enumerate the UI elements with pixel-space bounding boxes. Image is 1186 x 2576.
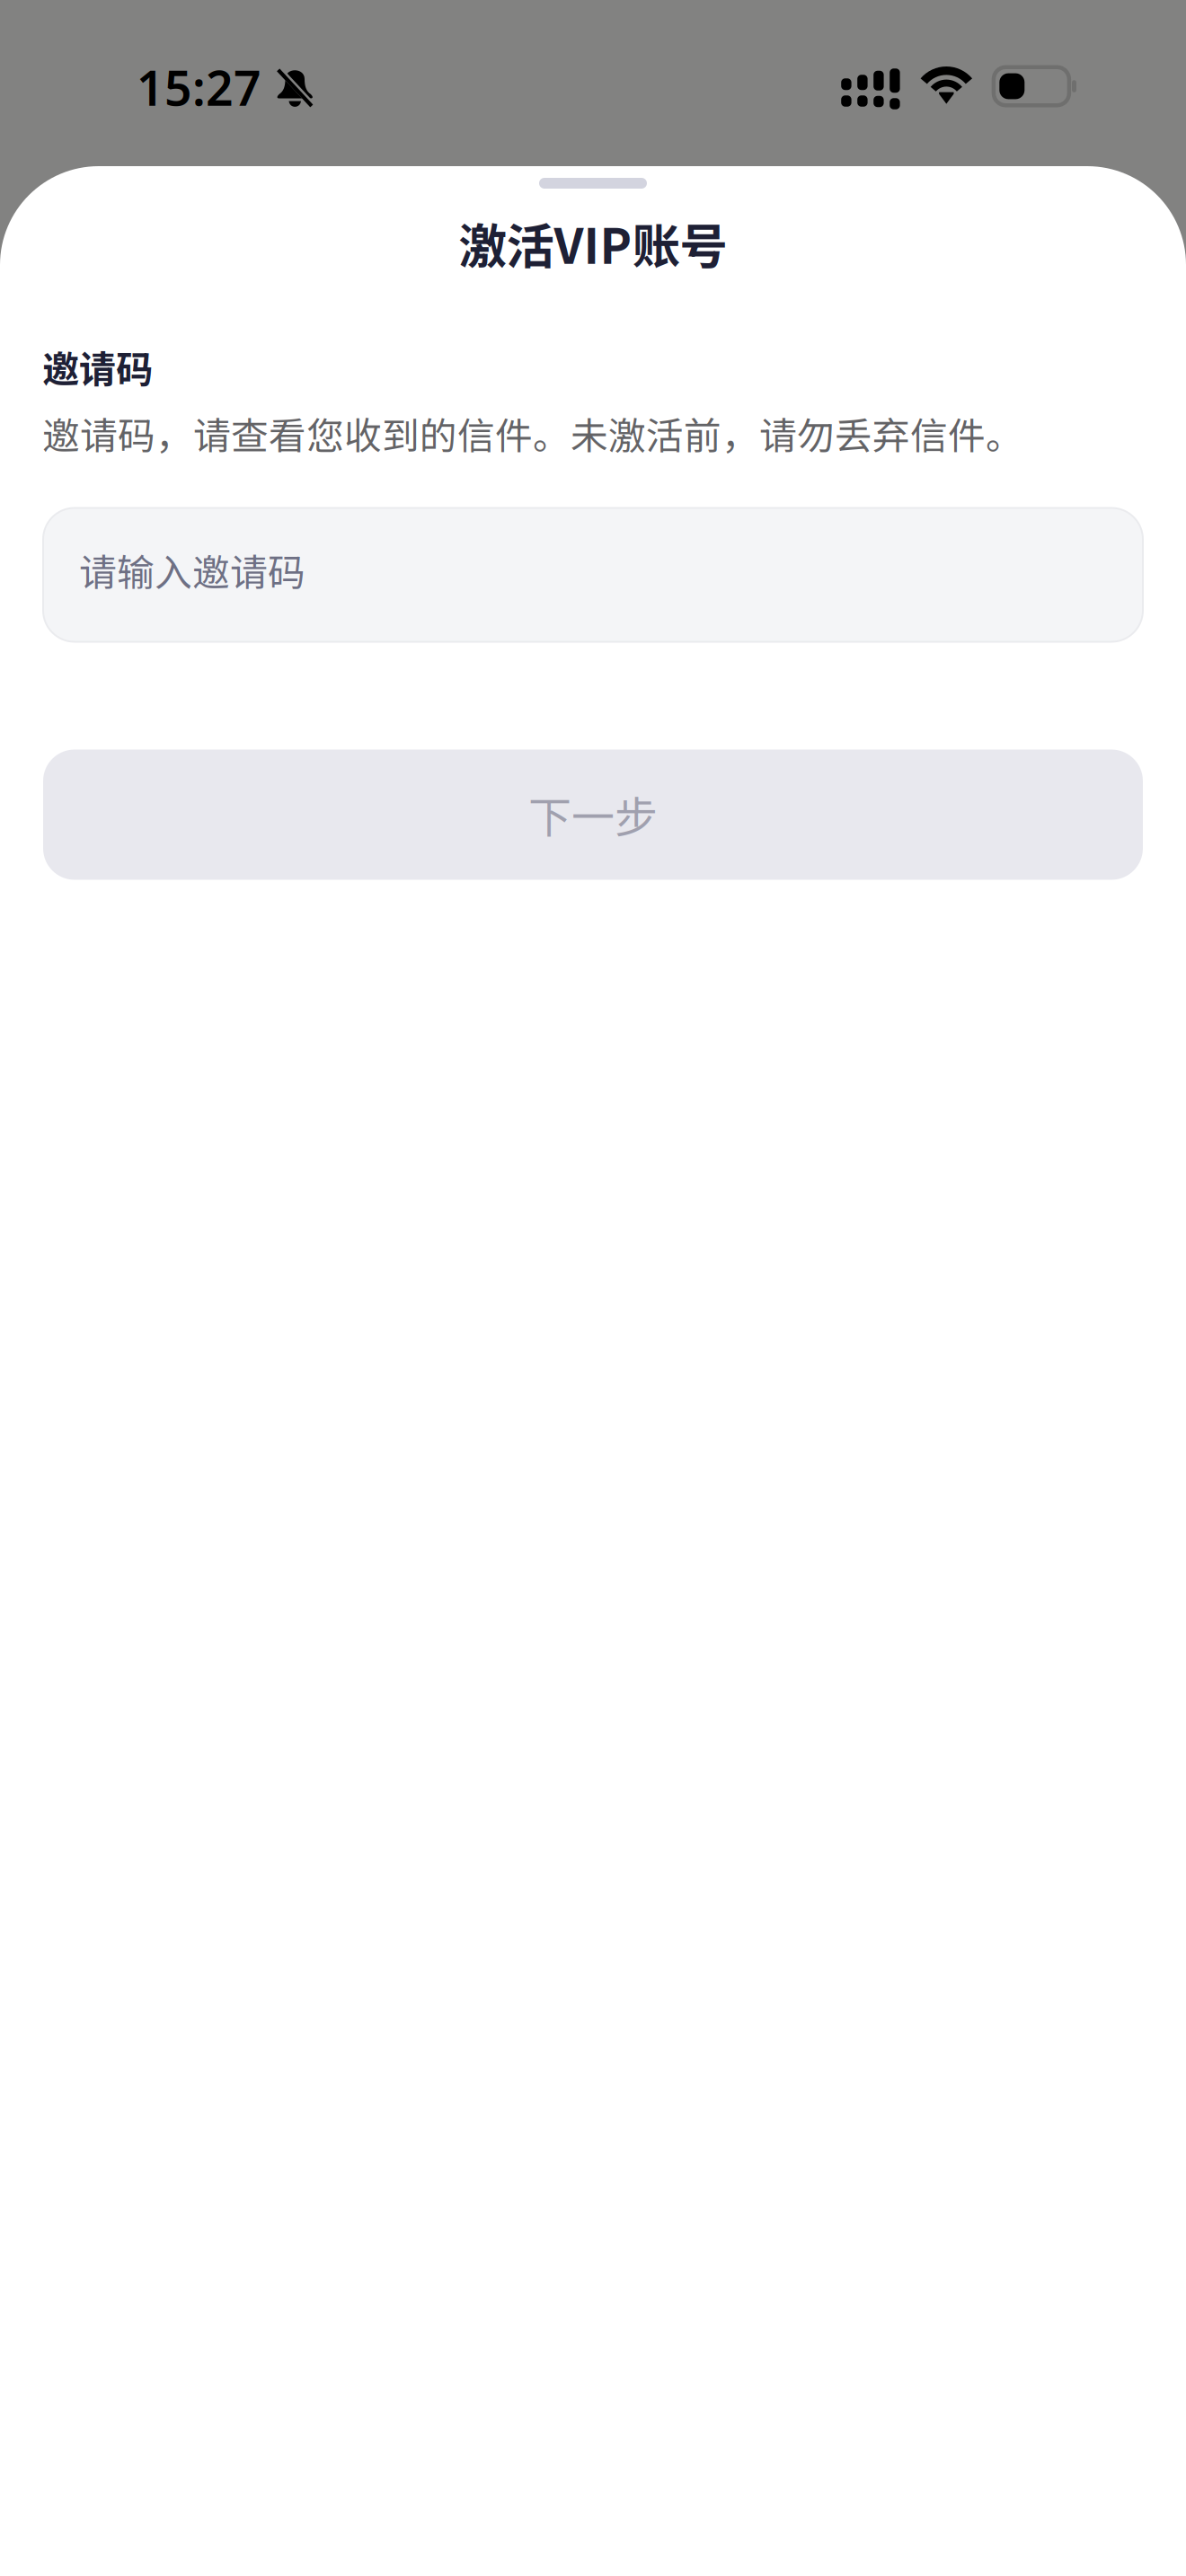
- staticText: 激活VIP账号: [459, 208, 727, 278]
- button[interactable]: 下一步: [43, 750, 1143, 880]
- staticText: 请输入邀请码: [79, 543, 305, 597]
- staticText: 邀请码，请查看您收到的信件。未激活前，请勿丢弃信件。: [42, 406, 1023, 460]
- staticText: 15:27: [137, 55, 261, 120]
- button[interactable]: Dismiss: [0, 0, 1186, 2576]
- button[interactable]: 请输入邀请码: [43, 508, 1143, 642]
- staticText: 下一步: [528, 783, 658, 845]
- staticText: 邀请码: [42, 340, 153, 393]
